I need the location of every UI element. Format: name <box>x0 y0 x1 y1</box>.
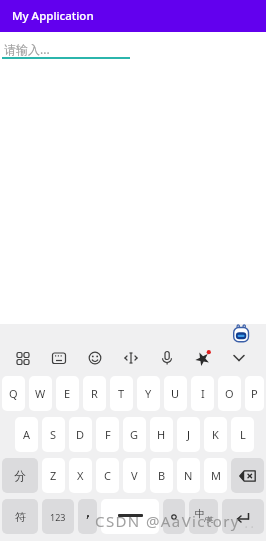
button[interactable]: M <box>204 458 227 493</box>
staticText: CSDN @AaVictory <box>95 511 240 531</box>
button[interactable] <box>231 458 264 493</box>
button[interactable]: W <box>29 376 52 411</box>
button[interactable]: Z <box>42 458 65 493</box>
staticText: 请输入... <box>4 41 50 57</box>
staticText: P <box>251 386 258 401</box>
button[interactable] <box>190 345 216 371</box>
staticText: 符 <box>15 510 26 524</box>
staticText: 分 <box>14 468 26 483</box>
button[interactable]: U <box>164 376 187 411</box>
staticText: E <box>64 386 71 401</box>
button[interactable]: P <box>245 376 264 411</box>
button[interactable] <box>78 499 97 534</box>
staticText: O <box>225 386 234 401</box>
button[interactable] <box>82 345 108 371</box>
staticText: M <box>211 468 221 483</box>
staticText: 。。 <box>245 521 257 529</box>
staticText: B <box>158 468 166 483</box>
staticText: A <box>23 427 31 442</box>
button[interactable]: 符 <box>2 499 38 534</box>
button[interactable]: O <box>218 376 241 411</box>
staticText: X <box>77 468 84 483</box>
button[interactable]: 中 <box>189 499 218 534</box>
staticText: My Application <box>12 8 94 24</box>
button[interactable]: K <box>204 417 227 452</box>
button[interactable] <box>233 324 250 343</box>
button[interactable] <box>222 499 264 534</box>
button[interactable]: E <box>56 376 79 411</box>
staticText: G <box>130 427 139 442</box>
button[interactable]: 123 <box>42 499 74 534</box>
button[interactable]: X <box>69 458 92 493</box>
button[interactable] <box>226 345 252 371</box>
staticText: W <box>35 386 46 401</box>
button[interactable] <box>154 345 180 371</box>
staticText: F <box>105 427 111 442</box>
button[interactable]: I <box>191 376 214 411</box>
button[interactable]: Y <box>137 376 160 411</box>
staticText: C <box>104 468 111 483</box>
button[interactable] <box>118 345 144 371</box>
button[interactable]: H <box>150 417 173 452</box>
staticText: N <box>184 468 193 483</box>
button[interactable]: N <box>177 458 200 493</box>
button[interactable]: S <box>42 417 65 452</box>
button[interactable] <box>163 499 185 534</box>
staticText: D <box>76 427 85 442</box>
button[interactable]: B <box>150 458 173 493</box>
staticText: J <box>187 427 191 442</box>
button[interactable]: R <box>83 376 106 411</box>
staticText: I <box>201 386 205 401</box>
staticText: S <box>50 427 57 442</box>
button[interactable]: D <box>69 417 92 452</box>
staticText: L <box>240 427 246 442</box>
staticText: U <box>171 386 180 401</box>
staticText: K <box>212 427 219 442</box>
button[interactable]: Q <box>2 376 25 411</box>
staticText: Y <box>145 386 152 401</box>
button[interactable]: A <box>15 417 38 452</box>
button[interactable]: V <box>123 458 146 493</box>
button[interactable]: T <box>110 376 133 411</box>
staticText: 中 <box>195 507 205 520</box>
button[interactable]: F <box>96 417 119 452</box>
staticText: 123 <box>50 511 66 523</box>
staticText: R <box>91 386 98 401</box>
button[interactable] <box>101 499 159 534</box>
staticText: Q <box>9 386 18 401</box>
staticText: V <box>131 468 138 483</box>
staticText: Z <box>50 468 57 483</box>
button[interactable] <box>46 345 72 371</box>
button[interactable]: J <box>177 417 200 452</box>
button[interactable]: C <box>96 458 119 493</box>
button[interactable] <box>10 345 36 371</box>
staticText: /英 <box>204 515 214 525</box>
button[interactable]: L <box>231 417 254 452</box>
button[interactable]: 分 <box>2 458 38 493</box>
staticText: H <box>157 427 166 442</box>
staticText: T <box>118 386 125 401</box>
button[interactable]: G <box>123 417 146 452</box>
